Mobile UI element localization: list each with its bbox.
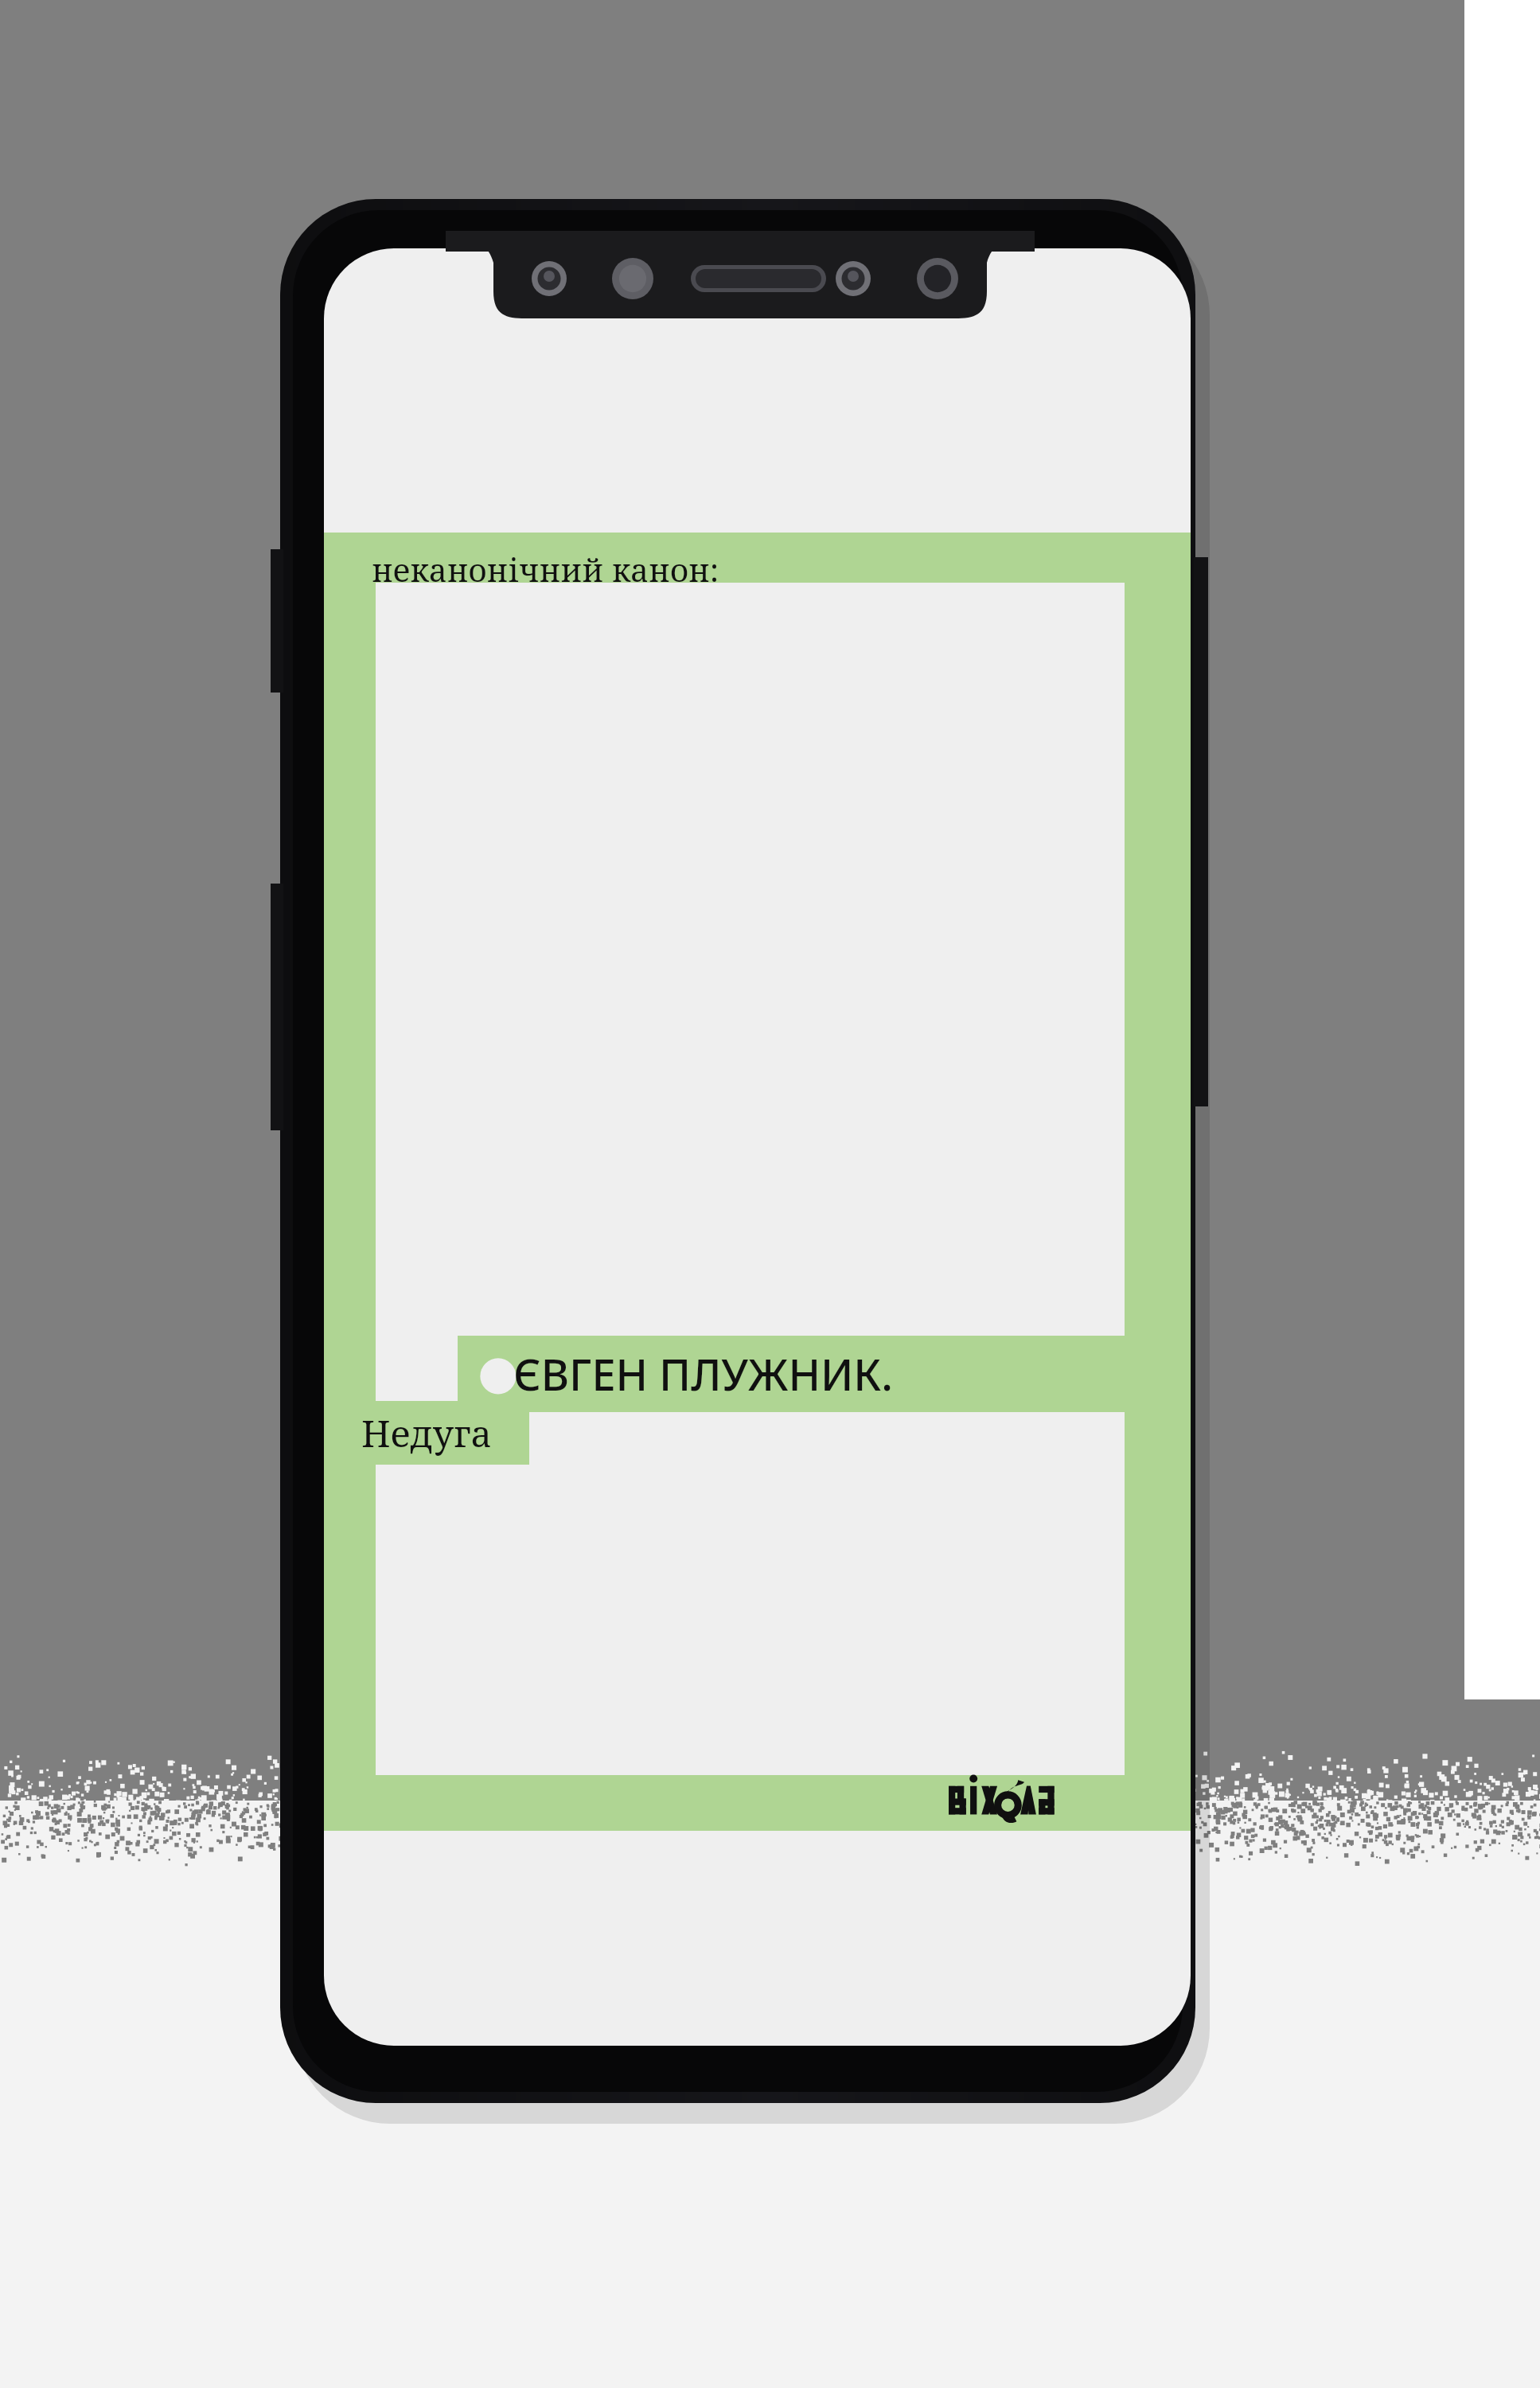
button[interactable]: неканонічний канон: [372,544,881,594]
button[interactable]: Vikhola [949,1770,1120,1823]
button[interactable]: Недуга [324,1401,529,1465]
button[interactable] [458,1336,1191,1412]
staticText: ЄВГЕН ПЛУЖНИК. [513,1344,893,1403]
staticText: Недуга [361,1408,492,1458]
staticText: неканонічний канон: [372,548,719,591]
